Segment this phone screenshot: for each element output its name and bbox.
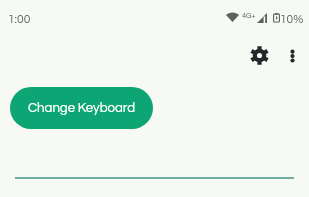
button[interactable]: Change Keyboard [10,87,153,129]
button[interactable]: More options [278,42,306,70]
staticText: 4G+ [242,12,256,20]
staticText: Change Keyboard [28,101,135,115]
staticText: 10% [280,13,304,25]
staticText: 1:00 [8,13,31,25]
button[interactable]: Settings [245,41,273,69]
